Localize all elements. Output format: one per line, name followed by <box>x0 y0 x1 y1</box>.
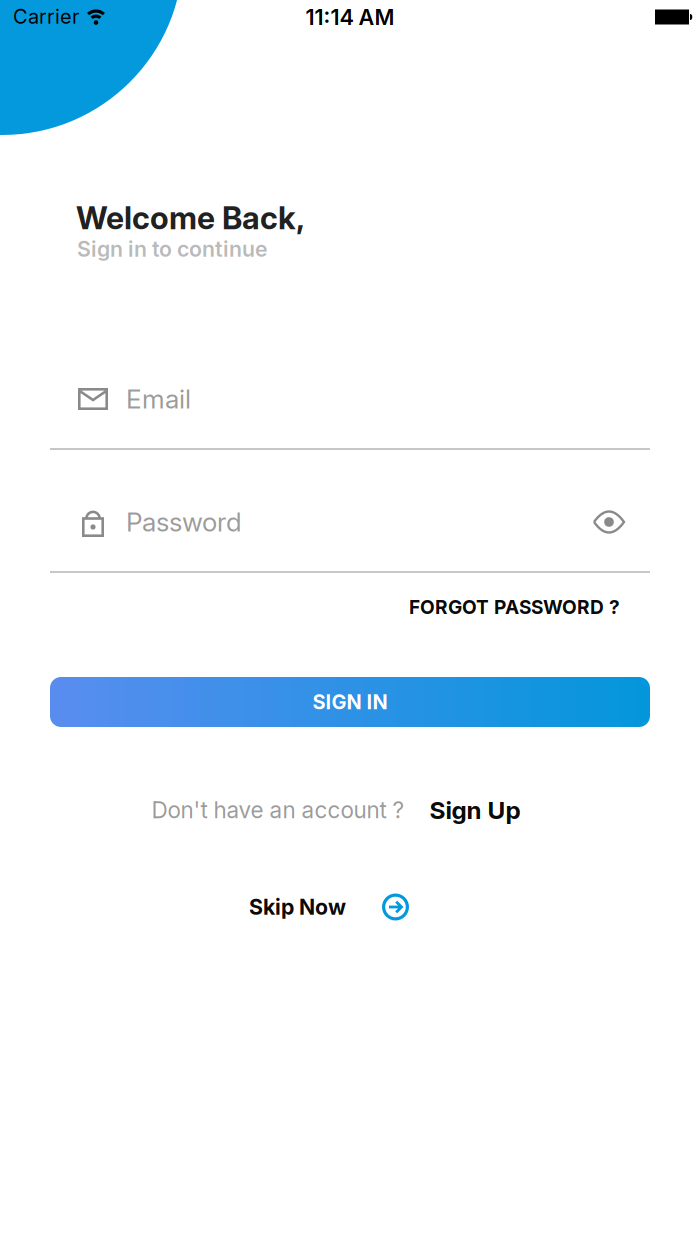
staticText: Sign in to continue <box>77 236 268 262</box>
button[interactable]: FORGOT PASSWORD ? <box>409 595 620 619</box>
button[interactable]: Password <box>50 492 650 552</box>
button[interactable]: SIGN IN <box>50 677 650 727</box>
staticText: Sign Up <box>429 795 520 825</box>
staticText: Welcome Back, <box>76 199 305 237</box>
staticText: Don't have an account ? <box>151 796 404 824</box>
staticText: SIGN IN <box>312 690 387 714</box>
button[interactable]: Sign Up <box>429 795 520 825</box>
staticText: FORGOT PASSWORD ? <box>409 595 620 619</box>
staticText: Skip Now <box>249 894 346 920</box>
button[interactable] <box>593 510 625 534</box>
button[interactable]: Skip Now <box>249 893 409 920</box>
staticText: Email <box>126 383 191 415</box>
staticText: Password <box>126 506 242 538</box>
staticText: Carrier <box>13 4 79 29</box>
button[interactable]: Email <box>50 369 650 429</box>
staticText: 11:14 AM <box>305 4 394 30</box>
